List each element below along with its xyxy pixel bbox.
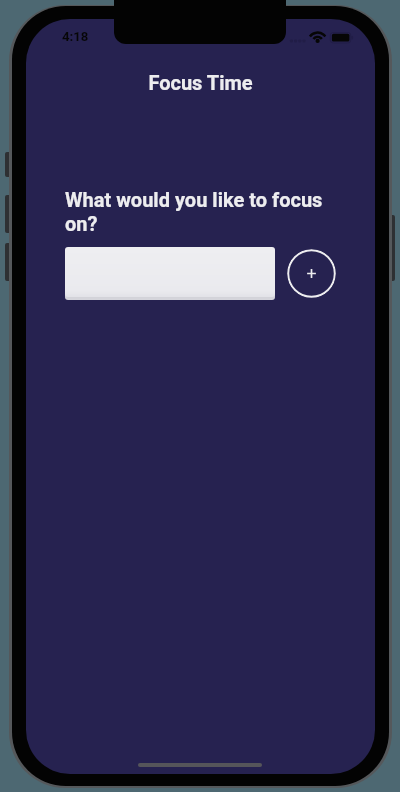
staticText: What would you like to focus on? [65, 188, 333, 236]
staticText: Focus Time [26, 71, 375, 94]
staticText: 4:18 [62, 29, 89, 44]
button[interactable]: Add focus task [287, 249, 336, 298]
button[interactable] [65, 247, 275, 297]
